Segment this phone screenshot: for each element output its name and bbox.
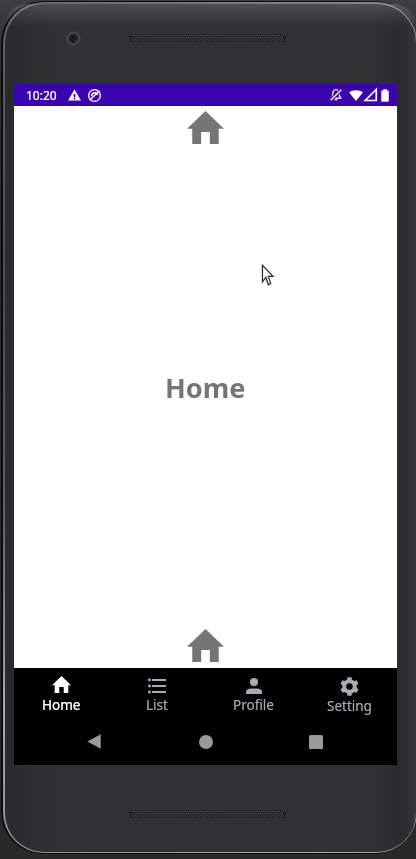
button[interactable]: Recent apps: [301, 727, 330, 756]
button[interactable]: Setting: [301, 668, 397, 724]
staticText: Setting: [327, 697, 372, 715]
button[interactable]: Home: [14, 668, 109, 724]
staticText: Profile: [233, 696, 274, 714]
staticText: Home: [42, 696, 81, 714]
staticText: Home: [165, 369, 246, 406]
button[interactable]: List: [109, 668, 205, 724]
staticText: List: [146, 696, 168, 714]
button[interactable]: Home: [191, 727, 220, 756]
staticText: 10:20: [26, 87, 57, 103]
button[interactable]: Back: [79, 727, 108, 756]
button[interactable]: Profile: [205, 668, 301, 724]
